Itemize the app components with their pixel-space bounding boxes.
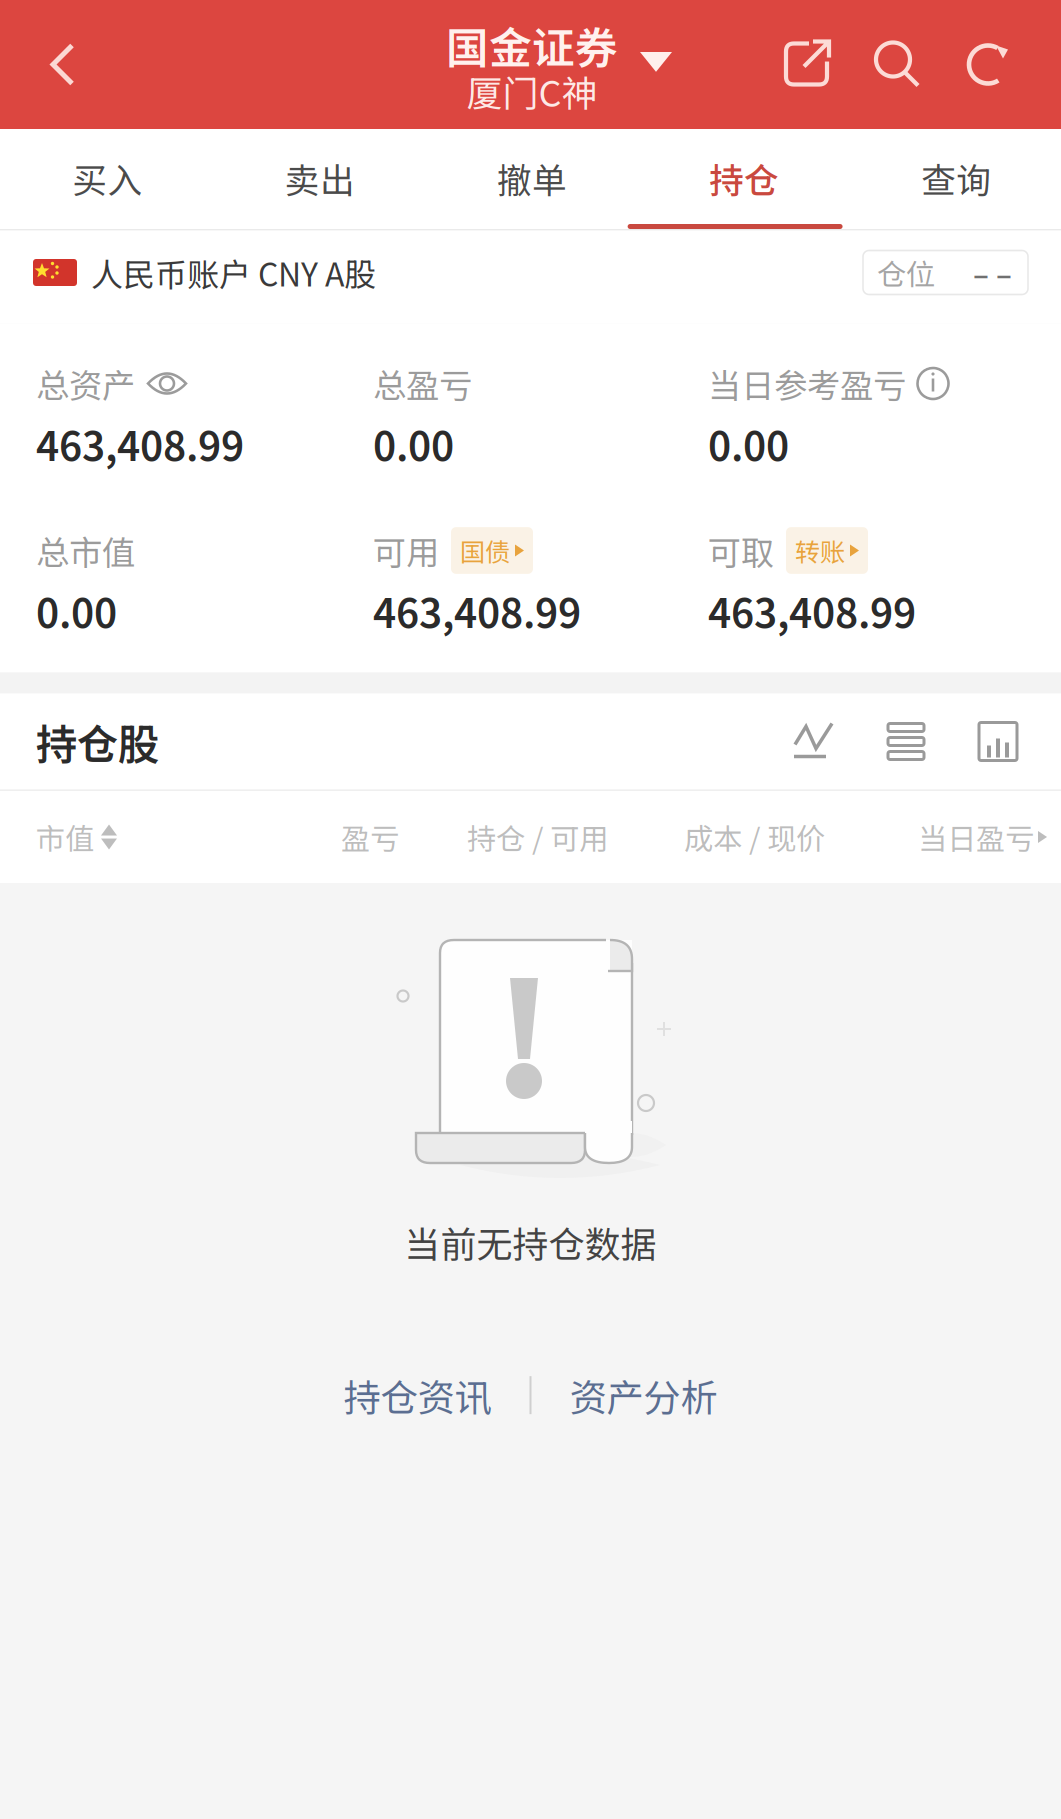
button[interactable]: 买入	[0, 129, 212, 229]
staticText: 资产分析	[569, 1368, 717, 1422]
button[interactable]: List view	[886, 722, 926, 760]
staticText: 持仓 / 可用	[467, 816, 608, 858]
staticText: 总市值	[36, 526, 135, 575]
staticText: 当日盈亏	[918, 816, 1034, 858]
button[interactable]: Search	[873, 38, 921, 90]
staticText: 转账	[795, 532, 845, 569]
staticText: 0.00	[373, 414, 454, 472]
button[interactable]: 持仓资讯	[337, 1368, 497, 1422]
staticText: 成本 / 现价	[684, 816, 825, 858]
staticText: – –	[973, 251, 1012, 294]
staticText: 国金证券	[446, 14, 618, 76]
staticText: 持仓股	[36, 712, 159, 771]
staticText: 463,408.99	[373, 581, 581, 639]
staticText: 可取	[708, 526, 774, 575]
button[interactable]: 持仓	[637, 129, 849, 229]
button[interactable]: 卖出	[212, 129, 424, 229]
staticText: 买入	[72, 153, 142, 203]
button[interactable]: Refresh	[963, 36, 1015, 92]
staticText: 卖出	[285, 153, 355, 203]
staticText: 人民币账户 CNY A股	[91, 249, 376, 296]
staticText: 0.00	[708, 414, 789, 472]
staticText: 持仓资讯	[343, 1368, 491, 1422]
staticText: 国债	[460, 532, 510, 569]
staticText: 463,408.99	[708, 581, 916, 639]
button[interactable]: 仓位	[863, 250, 1028, 294]
staticText: 总盈亏	[373, 359, 472, 408]
button[interactable]: Back	[8, 0, 118, 129]
staticText: 盈亏	[341, 816, 399, 858]
staticText: 查询	[921, 153, 991, 203]
staticText: 持仓	[709, 153, 779, 203]
button[interactable]: Bar chart	[978, 721, 1018, 761]
staticText: 当前无持仓数据	[404, 1216, 656, 1268]
staticText: 仓位	[877, 251, 935, 294]
staticText: 总资产	[36, 359, 135, 408]
staticText: 当日参考盈亏	[708, 359, 906, 408]
button[interactable]: 查询	[849, 129, 1061, 229]
button[interactable]: Trend chart	[794, 722, 834, 760]
staticText: 463,408.99	[36, 414, 244, 472]
staticText: 撤单	[497, 153, 567, 203]
button[interactable]: 资产分析	[563, 1368, 723, 1422]
staticText: 厦门C神	[466, 65, 597, 117]
button[interactable]: 国金证券	[0, 0, 1061, 129]
button[interactable]: 撤单	[424, 129, 637, 229]
staticText: 0.00	[36, 581, 117, 639]
staticText: 可用	[373, 526, 439, 575]
staticText: 市值	[36, 816, 94, 858]
button[interactable]: Share	[783, 38, 831, 90]
